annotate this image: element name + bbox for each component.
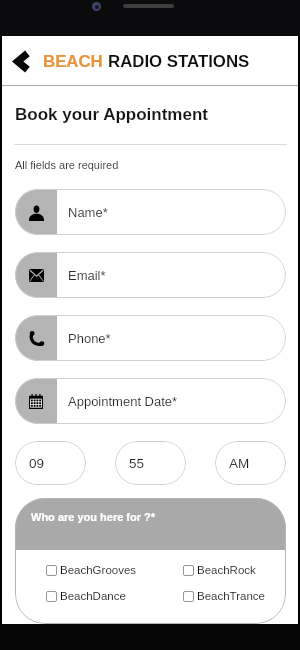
- button[interactable]: Back: [7, 46, 37, 76]
- staticText: BeachGrooves: [60, 564, 137, 577]
- staticText: Name*: [68, 205, 108, 220]
- staticText: BeachTrance: [197, 590, 265, 603]
- staticText: 55: [129, 456, 145, 471]
- staticText: BEACH: [43, 52, 108, 71]
- staticText: Email*: [68, 268, 106, 283]
- staticText: Book your Appointment: [15, 105, 208, 124]
- staticText: 09: [29, 456, 45, 471]
- staticText: Appointment Date*: [68, 394, 178, 409]
- button[interactable]: AM: [215, 441, 286, 485]
- button[interactable]: 09: [15, 441, 86, 485]
- button[interactable]: BeachRock: [183, 564, 256, 577]
- staticText: BeachRock: [197, 564, 256, 577]
- button[interactable]: BeachDance: [46, 590, 183, 603]
- staticText: RADIO STATIONS: [108, 52, 250, 71]
- staticText: AM: [229, 456, 250, 471]
- staticText: Phone*: [68, 331, 111, 346]
- button[interactable]: Name*: [15, 189, 286, 235]
- staticText: BeachDance: [60, 590, 126, 603]
- button[interactable]: Phone*: [15, 315, 286, 361]
- button[interactable]: BeachTrance: [183, 590, 265, 603]
- button[interactable]: Appointment Date*: [15, 378, 286, 424]
- staticText: Who are you here for ?*: [31, 511, 156, 523]
- button[interactable]: BeachGrooves: [46, 564, 183, 577]
- staticText: All fields are required: [15, 159, 119, 171]
- button[interactable]: Email*: [15, 252, 286, 298]
- button[interactable]: 55: [115, 441, 186, 485]
